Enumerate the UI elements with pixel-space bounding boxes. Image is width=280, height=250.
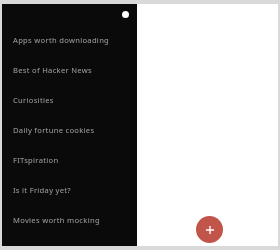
staticText: Daily fortune cookies	[13, 125, 95, 135]
button[interactable]: Profile	[122, 11, 129, 18]
staticText: Movies worth mocking	[13, 215, 100, 225]
button[interactable]: Best of Hacker News	[2, 55, 137, 85]
staticText: Apps worth downloading	[13, 35, 110, 45]
staticText: Best of Hacker News	[13, 65, 92, 75]
button[interactable]: FITspiration	[2, 145, 137, 175]
staticText: FITspiration	[13, 155, 59, 165]
staticText: Curiosities	[13, 95, 54, 105]
button[interactable]: Daily fortune cookies	[2, 115, 137, 145]
button[interactable]: Apps worth downloading	[2, 25, 137, 55]
staticText: Is it Friday yet?	[13, 185, 71, 195]
button[interactable]: Movies worth mocking	[2, 205, 137, 235]
button[interactable]: Curiosities	[2, 85, 137, 115]
button[interactable]: Add	[196, 216, 223, 243]
button[interactable]: Is it Friday yet?	[2, 175, 137, 205]
